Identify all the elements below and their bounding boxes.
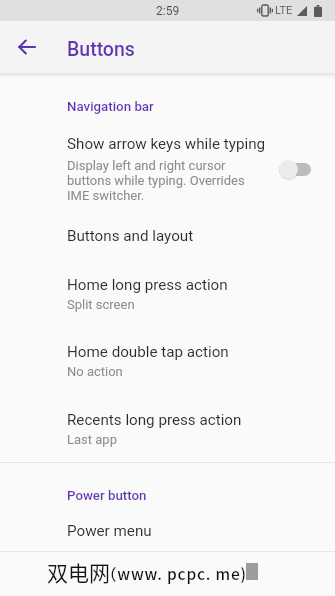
staticText: （www. pcpc. me) [101,562,247,584]
button[interactable]: Show arrow keys while typing [0,126,335,212]
staticText: Recents long press action [67,411,242,429]
staticText: 2:59 [156,4,180,18]
other: Battery [314,5,322,17]
button[interactable]: Power menu [0,514,335,552]
button[interactable]: Recents long press action [0,403,335,455]
staticText: Navigation bar [67,99,154,115]
staticText: 双电网 [47,557,110,587]
staticText: Show arrow keys while typing [67,135,266,153]
staticText: Power menu [67,522,152,540]
staticText: Buttons and layout [67,227,194,245]
staticText: Split screen [67,297,135,312]
button[interactable]: Home double tap action [0,335,335,387]
staticText: Power button [67,488,147,504]
staticText: LTE [275,4,293,17]
staticText: Last app [67,432,117,447]
staticText: Buttons [67,38,135,61]
staticText: Display left and right cursor buttons wh… [67,158,270,203]
button[interactable]: Navigate up [6,27,46,67]
staticText: Home double tap action [67,343,229,361]
other: Vibrate mode [257,5,273,16]
button[interactable]: Show arrow keys while typing [275,156,319,182]
staticText: No action [67,364,123,379]
other: Mobile signal [297,6,307,16]
button[interactable]: Buttons and layout [0,219,335,259]
staticText: Home long press action [67,276,228,294]
button[interactable]: Home long press action [0,268,335,320]
